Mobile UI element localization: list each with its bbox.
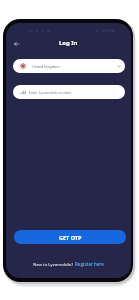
staticText: Log In	[59, 39, 78, 47]
staticText: New to Lycamobile?	[33, 261, 75, 267]
staticText: Register here	[75, 261, 104, 267]
staticText: GET OTP	[59, 234, 82, 241]
button[interactable]: Register here	[75, 261, 104, 267]
button[interactable]: GET OTP	[14, 230, 126, 244]
button[interactable]: Back	[11, 39, 21, 49]
button[interactable]: +44	[13, 85, 125, 99]
button[interactable]: United Kingdom	[13, 59, 125, 73]
staticText: Enter Lycamobile number	[29, 90, 72, 95]
staticText: +44	[20, 90, 27, 95]
staticText: United Kingdom	[32, 64, 60, 69]
